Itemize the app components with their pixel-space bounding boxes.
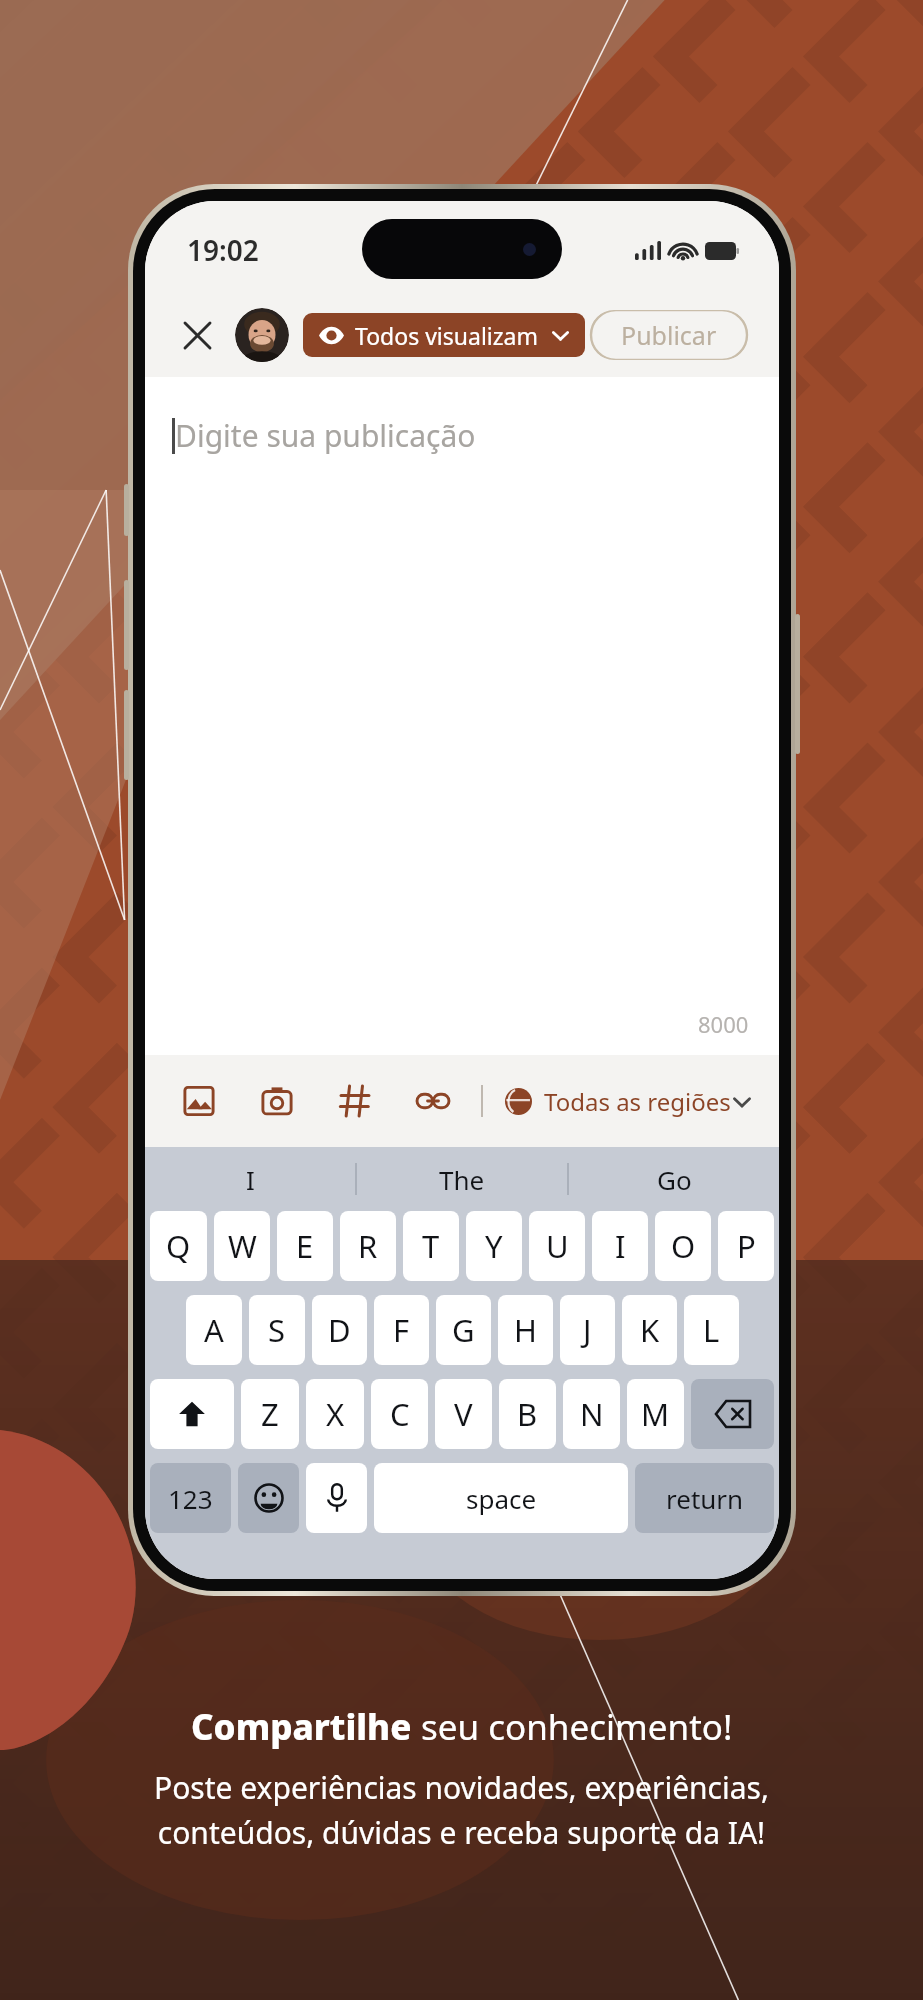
button[interactable]: Y [466, 1211, 522, 1281]
staticText: P [737, 1225, 756, 1267]
button[interactable]: H [498, 1295, 553, 1365]
staticText: D [328, 1309, 351, 1351]
staticText: Z [261, 1393, 279, 1435]
button[interactable]: Todos visualizam [303, 313, 585, 357]
button[interactable]: W [214, 1211, 270, 1281]
staticText: space [466, 1481, 537, 1516]
button[interactable]: D [312, 1295, 367, 1365]
staticText: Y [485, 1225, 503, 1267]
button[interactable]: A [186, 1295, 242, 1365]
staticText: W [228, 1225, 257, 1267]
staticText: V [454, 1393, 473, 1435]
staticText: U [546, 1225, 569, 1267]
staticText: A [204, 1309, 224, 1351]
button[interactable]: Hashtag [329, 1075, 381, 1127]
staticText: F [393, 1309, 410, 1351]
staticText: Digite sua publicação [175, 415, 476, 456]
button[interactable]: Microfone [306, 1463, 367, 1533]
button[interactable]: P [718, 1211, 774, 1281]
button[interactable]: O [655, 1211, 711, 1281]
button[interactable]: G [436, 1295, 491, 1365]
button[interactable]: Imagem [173, 1075, 225, 1127]
staticText: Todas as regiões [544, 1085, 731, 1118]
button[interactable]: V [435, 1379, 492, 1449]
button[interactable]: X [306, 1379, 364, 1449]
staticText: Publicar [621, 318, 717, 352]
staticText: The [439, 1162, 485, 1197]
staticText: J [583, 1309, 592, 1351]
button[interactable]: M [627, 1379, 684, 1449]
button[interactable]: S [249, 1295, 305, 1365]
staticText: M [641, 1393, 670, 1435]
button[interactable]: Câmera [251, 1075, 303, 1127]
button[interactable]: Publicar [589, 310, 749, 360]
button[interactable]: 123 [150, 1463, 231, 1533]
staticText: Q [166, 1225, 191, 1267]
button[interactable]: return [635, 1463, 774, 1533]
staticText: I [615, 1225, 626, 1267]
staticText: Compartilhe [191, 1703, 421, 1751]
button[interactable]: U [529, 1211, 585, 1281]
button[interactable]: Link [407, 1075, 459, 1127]
staticText: Todos visualizam [355, 320, 538, 351]
staticText: E [296, 1225, 314, 1267]
button[interactable]: I [592, 1211, 648, 1281]
staticText: N [580, 1393, 604, 1435]
button[interactable]: K [622, 1295, 677, 1365]
button[interactable]: space [374, 1463, 628, 1533]
button[interactable]: Go [569, 1147, 779, 1211]
staticText: G [452, 1309, 475, 1351]
staticText: S [268, 1309, 286, 1351]
button[interactable]: Z [241, 1379, 299, 1449]
button[interactable]: J [560, 1295, 615, 1365]
staticText: 8000 [698, 1009, 749, 1039]
button[interactable]: N [563, 1379, 620, 1449]
button[interactable]: T [403, 1211, 459, 1281]
staticText: L [703, 1309, 720, 1351]
staticText: seu conhecimento! [421, 1703, 733, 1751]
staticText: B [517, 1393, 538, 1435]
staticText: 19:02 [187, 231, 259, 269]
button[interactable]: Backspace [691, 1379, 774, 1449]
button[interactable]: I [145, 1147, 355, 1211]
button[interactable]: Shift [150, 1379, 234, 1449]
button[interactable]: Fechar [175, 313, 219, 357]
button[interactable]: C [371, 1379, 428, 1449]
staticText: C [390, 1393, 410, 1435]
staticText: return [666, 1481, 744, 1516]
button[interactable]: B [499, 1379, 556, 1449]
staticText: K [640, 1309, 660, 1351]
button[interactable]: F [374, 1295, 429, 1365]
staticText: 123 [168, 1481, 213, 1516]
staticText: H [514, 1309, 537, 1351]
staticText: Go [657, 1162, 692, 1197]
staticText: I [246, 1162, 255, 1197]
staticText: R [358, 1225, 378, 1267]
button[interactable]: Todas as regiões [505, 1085, 751, 1118]
button[interactable]: Emoji [238, 1463, 299, 1533]
button[interactable]: E [277, 1211, 333, 1281]
button[interactable]: R [340, 1211, 396, 1281]
button[interactable]: Perfil [235, 308, 289, 362]
button[interactable]: Q [150, 1211, 207, 1281]
button[interactable]: The [357, 1147, 567, 1211]
button[interactable]: L [684, 1295, 739, 1365]
staticText: T [422, 1225, 440, 1267]
staticText: X [326, 1393, 345, 1435]
staticText: O [671, 1225, 696, 1267]
staticText: Poste experiências novidades, experiênci… [154, 1767, 769, 1852]
